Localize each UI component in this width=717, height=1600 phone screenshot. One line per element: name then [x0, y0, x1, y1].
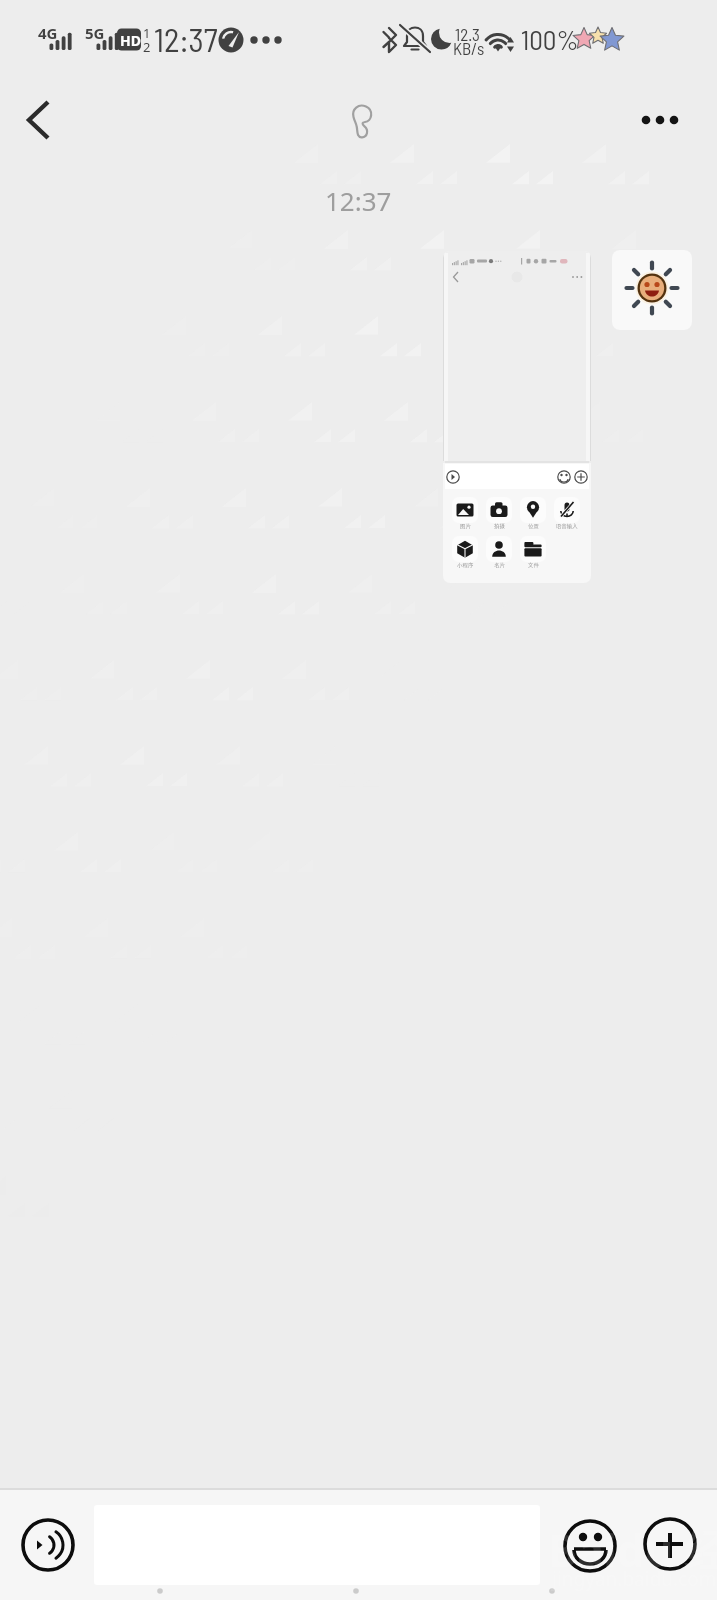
staticText: 文件	[528, 562, 539, 569]
staticText: 1	[143, 24, 151, 42]
button[interactable]: Emoji	[562, 1518, 618, 1574]
staticText: 5G	[85, 23, 105, 43]
staticText: 12:37	[325, 183, 392, 218]
staticText: Baidu 经验	[548, 1520, 717, 1580]
button[interactable]: Contact avatar	[612, 250, 692, 330]
staticText: 小程序	[457, 562, 474, 569]
button[interactable]: Back	[6, 90, 66, 150]
button[interactable]: Voice input	[20, 1517, 76, 1573]
staticText: 名片	[494, 562, 505, 569]
staticText: HD	[120, 31, 141, 50]
staticText: 100%	[521, 23, 579, 55]
staticText: 12:37	[154, 19, 218, 59]
button[interactable]: Sent screenshot	[443, 251, 591, 583]
button[interactable]: More options	[628, 90, 688, 150]
staticText: jingyan.baidu.com	[552, 1566, 717, 1592]
staticText: 12.3	[455, 24, 480, 44]
staticText: 4G	[38, 23, 58, 43]
button[interactable]: More functions	[642, 1516, 698, 1572]
staticText: 语音输入	[556, 523, 578, 530]
staticText: 拍摄	[494, 523, 505, 530]
staticText: KB/s	[453, 38, 485, 58]
staticText: 位置	[528, 523, 539, 530]
staticText: 2	[143, 38, 151, 56]
staticText: 图片	[460, 523, 471, 530]
